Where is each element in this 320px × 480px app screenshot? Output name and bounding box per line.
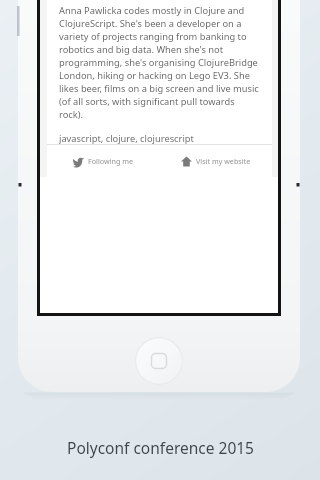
staticText: javascript, clojure, clojurescript <box>59 132 194 144</box>
button[interactable]: Home <box>135 337 183 385</box>
button[interactable]: Following me <box>47 145 159 177</box>
staticText: Following me <box>88 156 134 166</box>
staticText: Visit my website <box>196 156 251 166</box>
staticText: Anna Pawlicka codes mostly in Clojure an… <box>59 4 261 121</box>
staticText: Polyconf conference 2015 <box>67 437 254 458</box>
button[interactable]: Visit my website <box>159 145 272 177</box>
